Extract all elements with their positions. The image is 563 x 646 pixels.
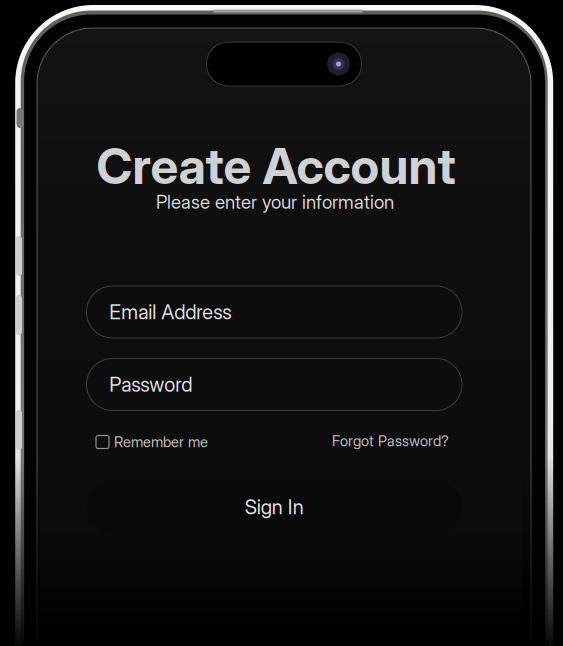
- staticText: Email Address: [109, 300, 231, 324]
- button[interactable]: Email Address: [86, 286, 462, 338]
- button[interactable]: Password: [86, 358, 462, 410]
- staticText: Sign In: [245, 495, 304, 519]
- button[interactable]: Forgot Password?: [332, 432, 449, 450]
- staticText: Password: [109, 372, 192, 397]
- staticText: Forgot Password?: [332, 432, 449, 450]
- staticText: Create Account: [96, 136, 455, 196]
- button[interactable]: Remember me: [96, 433, 208, 451]
- button[interactable]: Sign In: [86, 480, 462, 534]
- staticText: Remember me: [114, 433, 208, 451]
- staticText: Please enter your information: [156, 191, 394, 213]
